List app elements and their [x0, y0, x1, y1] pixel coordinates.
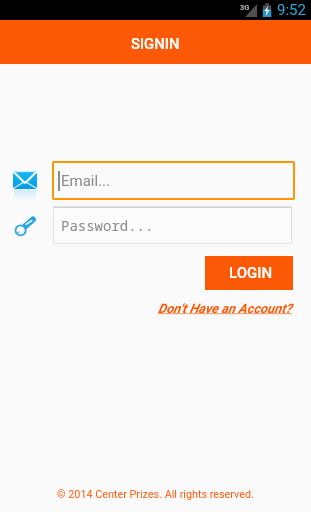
other: Password	[14, 215, 36, 237]
button[interactable]: LOGIN	[205, 256, 293, 290]
staticText: 9:52	[277, 1, 306, 19]
staticText: © 2014 Center Prizes. All rights reserve…	[57, 488, 254, 501]
button[interactable]: Don't Have an Account?	[158, 301, 292, 316]
other: Email	[13, 171, 37, 201]
staticText: SIGNIN	[131, 35, 180, 52]
staticText: Password...	[61, 216, 154, 235]
staticText: Email...	[61, 172, 110, 190]
staticText: LOGIN	[229, 264, 273, 282]
button[interactable]: Email...	[52, 161, 295, 200]
staticText: 3G	[240, 3, 250, 12]
button[interactable]: Password...	[53, 206, 292, 244]
